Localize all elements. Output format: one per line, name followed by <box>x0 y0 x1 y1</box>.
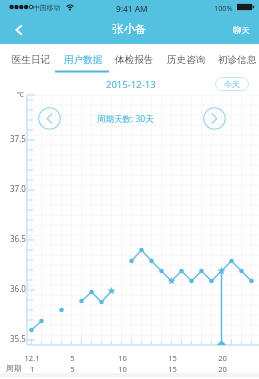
button[interactable]: 今天 <box>215 77 249 91</box>
staticText: 9:41 AM <box>116 3 148 14</box>
staticText: 20 <box>218 364 227 374</box>
button[interactable]: 用户数据 <box>64 47 103 72</box>
staticText: 35.5 <box>10 333 26 344</box>
staticText: 5 <box>70 364 75 374</box>
staticText: 医生日记 <box>12 54 51 66</box>
staticText: 100% <box>214 3 233 13</box>
staticText: 36.0 <box>10 283 26 294</box>
button[interactable]: 初诊信息 <box>218 47 257 72</box>
staticText: 20 <box>218 353 227 363</box>
button[interactable]: 体检报告 <box>115 47 154 72</box>
staticText: 张小备 <box>112 22 147 36</box>
staticText: 体检报告 <box>115 54 154 66</box>
staticText: 10 <box>118 364 127 374</box>
button[interactable]: Next cycle <box>203 107 226 130</box>
staticText: 36.5 <box>10 233 26 244</box>
button[interactable]: Back <box>4 16 34 44</box>
staticText: 37.5 <box>10 133 26 144</box>
staticText: 1 <box>30 364 35 374</box>
staticText: 中国移动 <box>33 3 61 12</box>
staticText: 2015-12-13 <box>106 78 156 91</box>
staticText: 周期天数: 30天 <box>97 113 154 125</box>
staticText: 今天 <box>224 79 240 89</box>
staticText: 15 <box>168 364 177 374</box>
staticText: 15 <box>168 353 177 363</box>
staticText: 用户数据 <box>64 54 103 66</box>
staticText: 初诊信息 <box>218 54 257 66</box>
staticText: 12.1 <box>24 353 40 363</box>
button[interactable]: 聊天 <box>233 16 250 44</box>
staticText: 37.0 <box>10 183 26 194</box>
button[interactable]: 医生日记 <box>12 47 51 72</box>
staticText: 10 <box>118 353 127 363</box>
button[interactable]: 历史咨询 <box>167 47 206 72</box>
staticText: 聊天 <box>233 25 250 35</box>
staticText: 历史咨询 <box>167 54 206 66</box>
staticText: 周期 <box>6 363 22 373</box>
staticText: ℃ <box>17 90 24 100</box>
staticText: 5 <box>70 353 75 363</box>
button[interactable]: Previous cycle <box>38 107 61 130</box>
